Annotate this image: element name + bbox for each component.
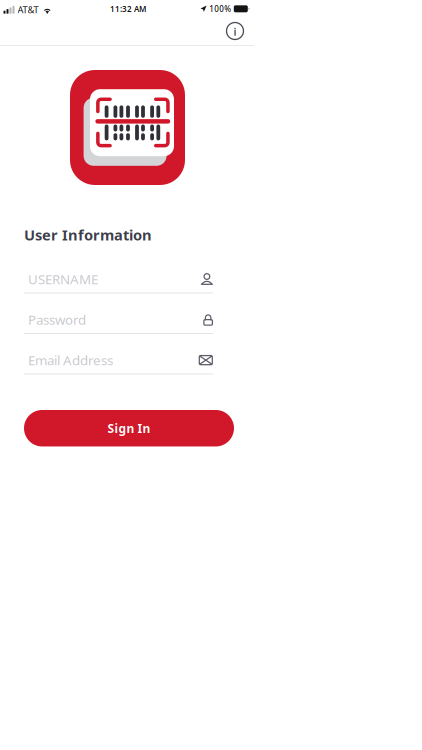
staticText: AT&T: [17, 3, 38, 16]
staticText: Sign In: [107, 420, 150, 436]
button[interactable]: Sign In: [24, 410, 234, 446]
button[interactable]: Information: [219, 17, 251, 45]
staticText: i: [233, 24, 236, 39]
staticText: 100%: [209, 3, 231, 14]
staticText: 11:32 AM: [110, 3, 146, 14]
staticText: Password: [28, 311, 86, 328]
staticText: USERNAME: [28, 270, 98, 288]
staticText: User Information: [24, 225, 152, 244]
staticText: Email Address: [28, 351, 113, 369]
